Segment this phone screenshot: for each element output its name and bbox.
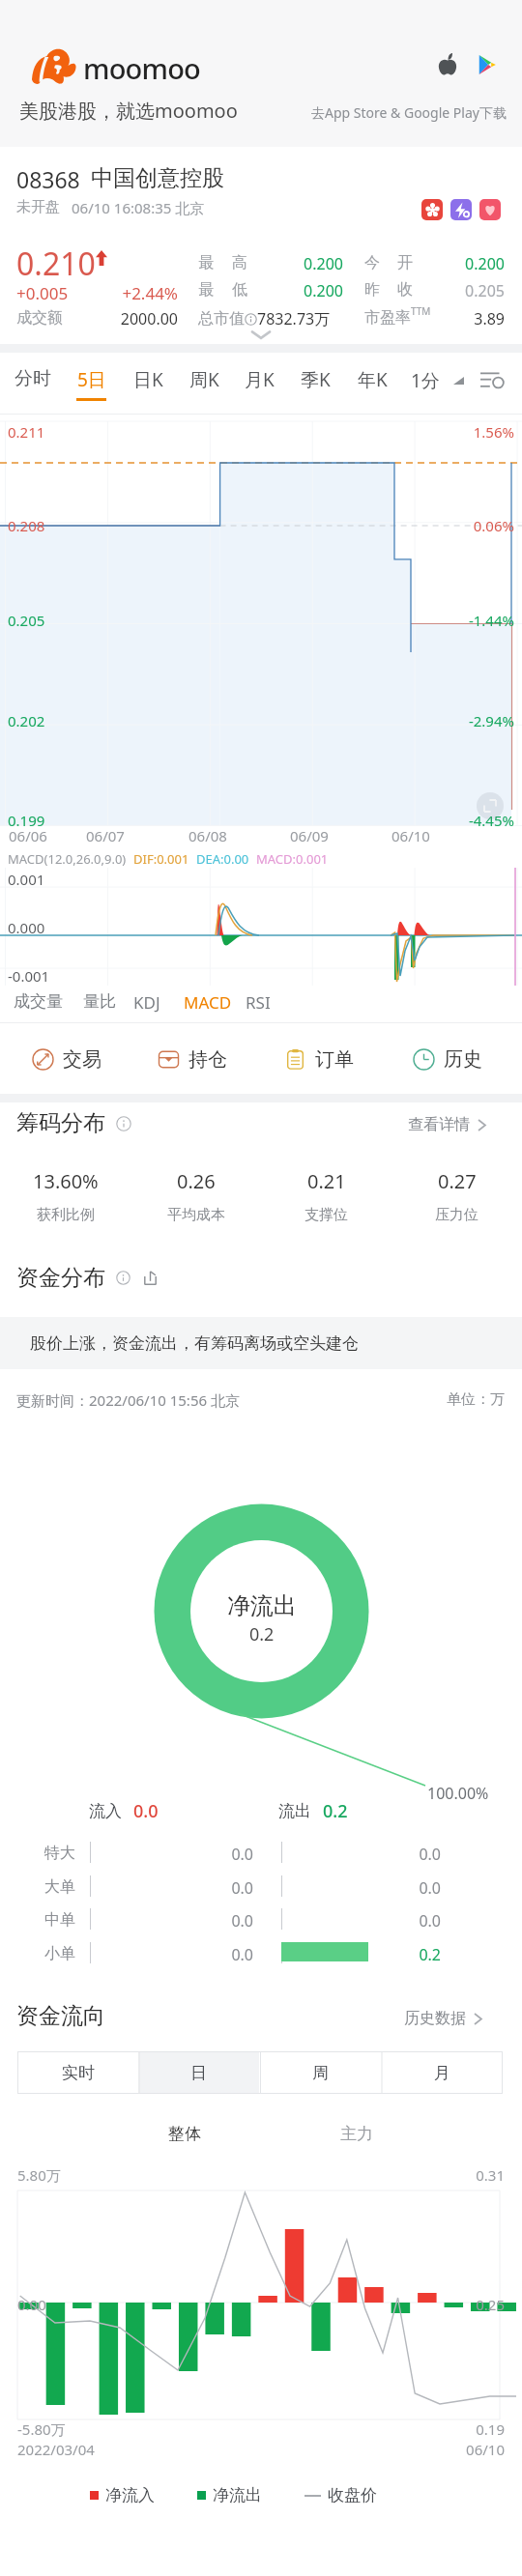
staticText: 0.0 — [383, 1844, 441, 1865]
staticText: 06/07 — [86, 826, 125, 845]
staticText: 收 — [397, 280, 413, 300]
staticText: 0.208 — [8, 516, 45, 535]
staticText: 中国创意控股 — [91, 164, 224, 192]
button[interactable]: 日K — [121, 367, 175, 410]
staticText: +0.005 — [16, 282, 69, 304]
button[interactable]: 分时 — [6, 367, 60, 410]
button[interactable]: RSI — [246, 991, 271, 1016]
staticText: 最 — [198, 280, 214, 300]
staticText: 成交量 — [14, 991, 63, 1012]
staticText: 流入 — [89, 1801, 122, 1821]
staticText: 开 — [397, 253, 413, 272]
button[interactable]: 量比 — [83, 991, 116, 1016]
staticText: 净流出 — [213, 2485, 262, 2505]
staticText: 2000.00 — [91, 308, 178, 329]
staticText: 0.200 — [266, 280, 343, 301]
staticText: 日K — [133, 367, 163, 392]
staticText: 0.202 — [8, 711, 45, 730]
staticText: 0.210 — [16, 243, 96, 285]
button[interactable]: 历史 — [413, 1045, 482, 1073]
staticText: 美股港股，就选moomoo — [19, 98, 238, 124]
staticText: 2022/03/04 — [17, 2440, 95, 2459]
staticText: 月 — [434, 2063, 450, 2083]
staticText: -1.44% — [418, 611, 514, 630]
staticText: 未开盘 — [16, 198, 60, 216]
staticText: 1.56% — [418, 422, 514, 442]
button[interactable]: 历史数据 — [404, 2007, 482, 2030]
button[interactable]: 日 — [138, 2051, 259, 2094]
button[interactable]: 周K — [177, 367, 231, 410]
button[interactable]: 年K — [345, 367, 399, 410]
button[interactable]: 实时 — [17, 2051, 138, 2094]
staticText: -0.001 — [8, 966, 50, 986]
staticText: 历史数据 — [404, 2009, 466, 2028]
staticText: 低 — [232, 280, 247, 300]
staticText: -2.94% — [418, 711, 514, 730]
staticText: 0.00 — [17, 2295, 46, 2314]
button[interactable]: 筹码分布 — [16, 1109, 131, 1138]
staticText: 净流出 — [227, 1591, 297, 1620]
button[interactable]: 月 — [381, 2051, 503, 2094]
staticText: 0.27 — [438, 1168, 477, 1194]
button[interactable]: App Store — [435, 52, 460, 77]
staticText: 压力位 — [435, 1206, 478, 1224]
staticText: 0.0 — [195, 1944, 253, 1965]
staticText: DIF:0.001 — [133, 850, 189, 868]
staticText: 年K — [358, 367, 388, 392]
button[interactable]: 持仓 — [158, 1045, 227, 1073]
staticText: 0.001 — [8, 870, 45, 889]
staticText: 历史 — [444, 1047, 482, 1072]
button[interactable]: 月K — [232, 367, 286, 410]
staticText: 量比 — [83, 991, 116, 1012]
staticText: 筹码分布 — [16, 1109, 105, 1137]
staticText: DEA:0.00 — [196, 850, 249, 868]
staticText: 实时 — [62, 2063, 95, 2083]
button[interactable]: HK market — [421, 199, 443, 220]
staticText: 100.00% — [427, 1783, 489, 1804]
staticText: 单位：万 — [418, 1390, 505, 1409]
button[interactable]: 查看详情 — [408, 1113, 486, 1136]
staticText: 0.0 — [383, 1910, 441, 1932]
button[interactable]: 资金分布 — [16, 1264, 158, 1291]
button[interactable]: 周 — [259, 2051, 381, 2094]
staticText: 资金分布 — [16, 1264, 105, 1291]
staticText: 0.0 — [383, 1877, 441, 1899]
button[interactable]: 主力 — [340, 2124, 375, 2147]
staticText: 06/08 — [188, 826, 227, 845]
staticText: 7832.73万 — [257, 308, 331, 329]
staticText: MACD — [184, 991, 232, 1014]
button[interactable]: 1分 — [411, 367, 464, 394]
staticText: 08368 — [16, 164, 80, 194]
staticText: 0.000 — [8, 918, 45, 937]
staticText: 小单 — [44, 1944, 75, 1963]
staticText: 0.205 — [8, 611, 45, 630]
staticText: 0.2 — [383, 1944, 441, 1965]
staticText: -5.80万 — [17, 2419, 66, 2439]
staticText: 06/09 — [290, 826, 329, 845]
staticText: 平均成本 — [167, 1206, 225, 1224]
button[interactable]: 交易 — [32, 1045, 101, 1073]
button[interactable]: Full screen chart — [477, 792, 504, 819]
staticText: 更新时间：2022/06/10 15:56 北京 — [16, 1390, 240, 1410]
staticText: 订单 — [315, 1047, 354, 1072]
staticText: 大单 — [44, 1877, 75, 1897]
button[interactable]: MACD — [184, 991, 232, 1016]
staticText: 0.0 — [195, 1877, 253, 1899]
staticText: 交易 — [63, 1047, 101, 1072]
staticText: 支撑位 — [304, 1206, 348, 1224]
staticText: 0.0 — [195, 1910, 253, 1932]
button[interactable]: 成交量 — [14, 991, 63, 1016]
button[interactable]: 5日 — [64, 367, 118, 410]
staticText: MACD:0.001 — [256, 850, 329, 868]
button[interactable]: KDJ — [133, 991, 160, 1016]
button[interactable]: 季K — [288, 367, 342, 410]
button[interactable]: Google Play — [474, 52, 499, 77]
button[interactable]: 整体 — [168, 2124, 203, 2147]
button[interactable]: Add to watchlist — [479, 199, 501, 220]
button[interactable]: 订单 — [284, 1045, 354, 1073]
button[interactable]: Chart settings — [479, 370, 506, 390]
button[interactable]: Level 0 quotes — [450, 199, 472, 220]
staticText: 0.0 — [133, 1799, 159, 1823]
staticText: moomoo — [83, 49, 201, 87]
staticText: 总市值 — [198, 309, 245, 329]
